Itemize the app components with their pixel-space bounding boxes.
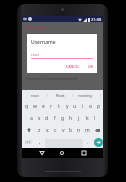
staticText: l: [94, 115, 96, 122]
staticText: g: [61, 115, 65, 122]
staticText: s: [38, 115, 41, 122]
button[interactable]: f: [51, 112, 59, 124]
button[interactable]: e: [39, 100, 47, 112]
staticText: n: [77, 127, 81, 134]
staticText: t: [58, 103, 60, 110]
button[interactable]: k: [83, 112, 91, 124]
staticText: x: [46, 127, 49, 134]
staticText: ?1©: [25, 140, 32, 145]
button[interactable]: n: [75, 124, 83, 136]
staticText: i: [82, 103, 84, 110]
staticText: .: [87, 139, 89, 146]
button[interactable]: b: [67, 124, 75, 136]
button[interactable]: q: [22, 100, 31, 112]
button[interactable]: c: [51, 124, 59, 136]
button[interactable]: i: [79, 100, 87, 112]
button[interactable]: v: [59, 124, 67, 136]
staticText: z: [38, 127, 41, 134]
staticText: Root: [56, 93, 65, 98]
staticText: j: [78, 115, 80, 122]
button[interactable]: j: [75, 112, 83, 124]
staticText: p: [97, 103, 101, 110]
staticText: r: [50, 103, 53, 110]
staticText: OK: [88, 64, 93, 69]
button[interactable]: rooting: [73, 90, 97, 100]
button[interactable]: Recents: [78, 148, 90, 158]
button[interactable]: s: [35, 112, 43, 124]
button[interactable]: o: [87, 100, 95, 112]
staticText: root: [31, 93, 39, 98]
staticText: c: [54, 127, 57, 134]
button[interactable]: z: [35, 124, 43, 136]
button[interactable]: Backspace: [91, 124, 103, 136]
button[interactable]: x: [43, 124, 51, 136]
button[interactable]: w: [31, 100, 39, 112]
staticText: k: [86, 115, 89, 122]
button[interactable]: CANCEL: [65, 64, 81, 69]
staticText: e: [42, 103, 45, 110]
staticText: d: [45, 115, 49, 122]
button[interactable]: a: [27, 112, 35, 124]
staticText: ⋮: [98, 93, 102, 98]
staticText: ,: [39, 139, 41, 146]
button[interactable]: y: [63, 100, 71, 112]
button[interactable]: g: [59, 112, 67, 124]
button[interactable]: t: [55, 100, 63, 112]
staticText: Username to authenticate with: [25, 76, 78, 81]
staticText: o: [89, 103, 93, 110]
button[interactable]: p: [95, 100, 103, 112]
button[interactable]: root: [22, 90, 47, 100]
button[interactable]: d: [43, 112, 51, 124]
staticText: a: [30, 115, 33, 122]
staticText: m: [85, 127, 90, 134]
staticText: w: [33, 103, 37, 110]
button[interactable]: ⋮: [97, 90, 103, 100]
button[interactable]: u: [71, 100, 79, 112]
button[interactable]: r: [47, 100, 55, 112]
staticText: root: [31, 52, 39, 57]
staticText: q: [25, 103, 29, 110]
staticText: Settings: [25, 24, 45, 31]
button[interactable]: .: [83, 136, 93, 148]
staticText: f: [54, 115, 56, 122]
button[interactable]: l: [91, 112, 99, 124]
staticText: h: [69, 115, 73, 122]
staticText: u: [73, 103, 77, 110]
button[interactable]: Root: [48, 90, 72, 100]
button[interactable]: ,: [35, 136, 45, 148]
button[interactable]: Back: [36, 148, 48, 158]
button[interactable]: Enter: [93, 136, 103, 148]
button[interactable]: m: [83, 124, 91, 136]
button[interactable]: Shift: [22, 124, 35, 136]
button[interactable]: h: [67, 112, 75, 124]
button[interactable]: OK: [87, 64, 94, 69]
button[interactable]: ?1©: [22, 136, 35, 148]
staticText: v: [62, 127, 65, 134]
staticText: y: [66, 103, 69, 110]
staticText: CANCEL: [66, 64, 80, 69]
staticText: 21:08: [91, 17, 102, 22]
staticText: rooting: [78, 93, 92, 98]
button[interactable]: Home: [56, 148, 68, 158]
staticText: Username: [31, 39, 56, 46]
staticText: b: [69, 127, 73, 134]
